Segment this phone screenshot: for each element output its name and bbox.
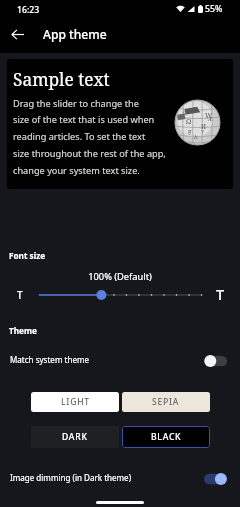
staticText: A	[194, 134, 198, 141]
staticText: ?	[201, 128, 204, 136]
button[interactable]: Navigate up	[3, 20, 32, 49]
staticText: T	[216, 284, 225, 304]
staticText: T	[17, 288, 23, 302]
button[interactable]: LIGHT	[31, 392, 119, 412]
staticText: Image dimming (in Dark theme)	[10, 472, 204, 483]
staticText: Theme	[9, 325, 37, 336]
staticText: Font size	[9, 250, 46, 261]
staticText: W	[205, 111, 213, 121]
staticText: Match system theme	[10, 354, 204, 365]
staticText: Sample text	[13, 68, 110, 92]
button[interactable]: BLACK	[122, 426, 210, 448]
staticText: Я	[183, 110, 187, 117]
staticText: Drag the slider to change the size of th…	[13, 97, 166, 177]
staticText: DARK	[62, 431, 88, 443]
button[interactable]: SEPIA	[122, 392, 210, 412]
button[interactable]: DARK	[31, 426, 119, 448]
staticText: 16:23	[17, 4, 40, 16]
staticText: Ω	[186, 117, 192, 127]
staticText: И	[201, 122, 206, 130]
staticText: Æ	[208, 116, 213, 123]
staticText: ह	[188, 128, 192, 136]
button[interactable]: Font size slider	[32, 288, 208, 302]
staticText: 55%	[205, 3, 223, 15]
button[interactable]: Image dimming (in Dark theme)	[0, 463, 240, 491]
staticText: SEPIA	[152, 396, 180, 408]
button[interactable]: Match system theme	[0, 345, 240, 373]
staticText: LIGHT	[61, 396, 90, 408]
staticText: BLACK	[151, 431, 182, 443]
staticText: App theme	[43, 26, 107, 42]
staticText: 100% (Default)	[0, 270, 240, 283]
